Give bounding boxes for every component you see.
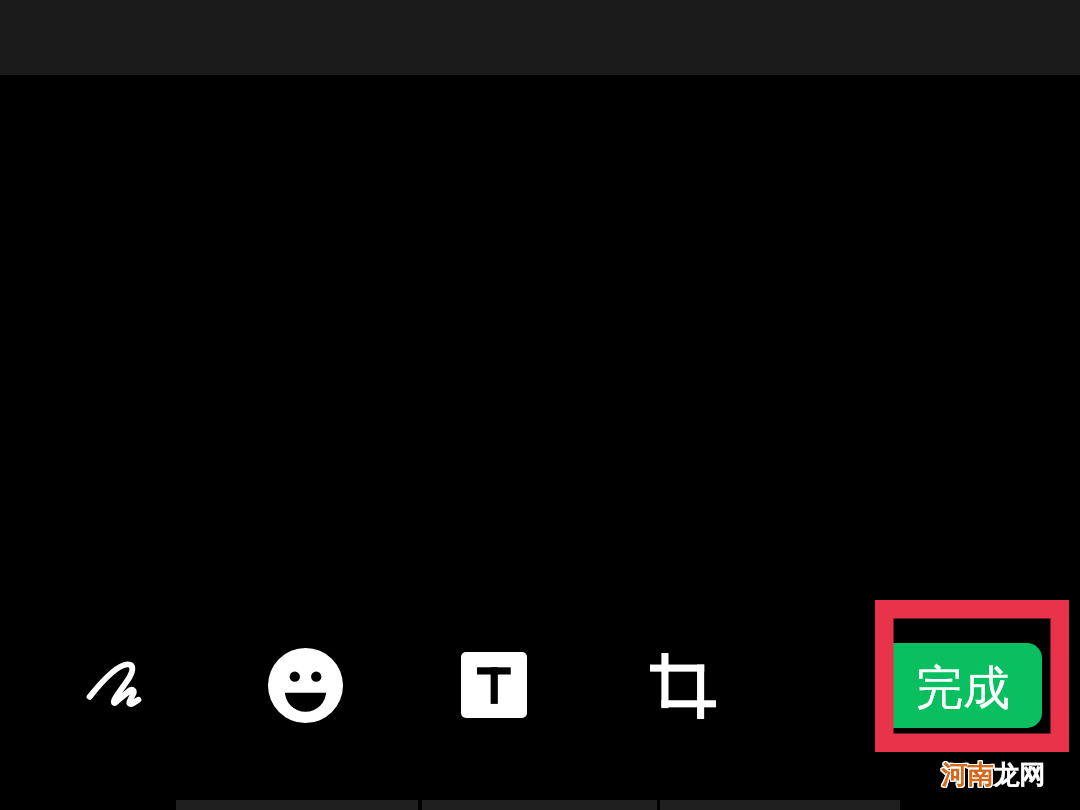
button[interactable]: Crop xyxy=(635,638,730,733)
staticText: 河南 xyxy=(942,760,994,793)
button[interactable]: Sticker xyxy=(258,638,353,733)
button[interactable]: Text xyxy=(446,637,541,732)
staticText: 龙网 xyxy=(993,759,1045,792)
staticText: 河南 xyxy=(941,759,993,792)
staticText: 完成 xyxy=(916,659,1010,718)
button[interactable]: Draw xyxy=(66,636,161,731)
button[interactable]: 完成 xyxy=(893,643,1042,728)
staticText: 河南 xyxy=(941,760,993,793)
staticText: 河南 xyxy=(940,758,992,791)
staticText: 河南 xyxy=(941,758,993,791)
staticText: 河南 xyxy=(940,759,992,792)
staticText: 河南 xyxy=(942,758,994,791)
staticText: 河南 xyxy=(940,760,992,793)
staticText: 河南 xyxy=(942,759,994,792)
